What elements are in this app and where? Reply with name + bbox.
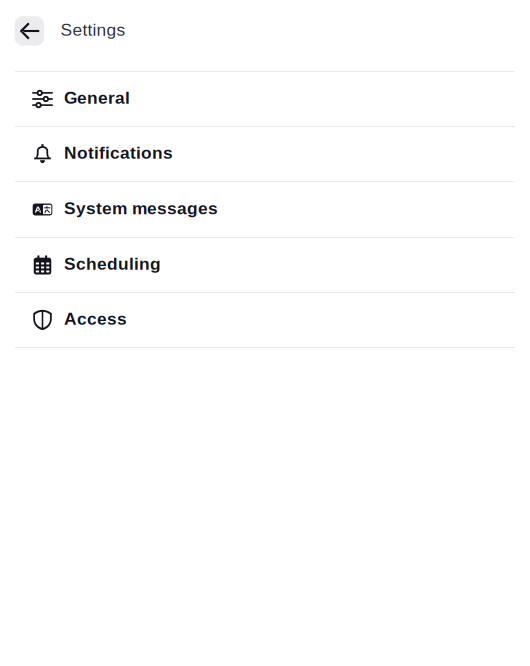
button[interactable]: Access (0, 293, 530, 347)
button[interactable]: Back (15, 16, 44, 46)
staticText: General (64, 88, 130, 107)
staticText: Notifications (64, 143, 173, 162)
staticText: System messages (64, 199, 218, 218)
button[interactable]: Notifications (0, 127, 530, 181)
button[interactable]: Scheduling (0, 238, 530, 292)
staticText: Access (64, 309, 127, 328)
button[interactable]: System messages (0, 182, 530, 237)
staticText: Settings (60, 20, 125, 39)
button[interactable]: General (0, 72, 530, 126)
staticText: Scheduling (64, 254, 161, 273)
